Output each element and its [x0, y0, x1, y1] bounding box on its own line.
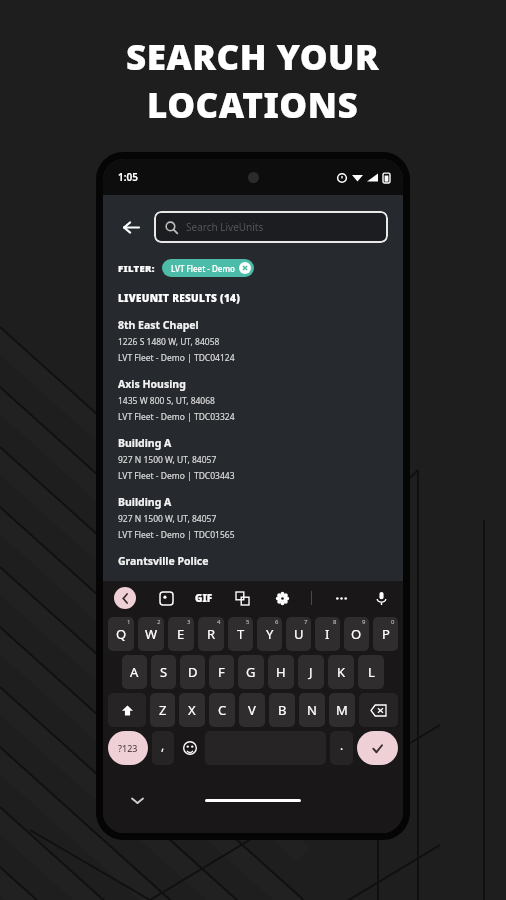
- staticText: Building A: [118, 495, 172, 509]
- staticText: G: [246, 663, 256, 681]
- button[interactable]: K: [328, 655, 354, 689]
- button[interactable]: G: [238, 655, 264, 689]
- staticText: T: [237, 625, 245, 643]
- staticText: S: [160, 663, 168, 681]
- staticText: F: [218, 663, 225, 681]
- staticText: L: [368, 663, 375, 681]
- staticText: 927 N 1500 W, UT, 84057: [118, 454, 217, 466]
- button[interactable]: H: [268, 655, 294, 689]
- button[interactable]: Emoji: [178, 731, 201, 765]
- button[interactable]: Z: [150, 693, 175, 727]
- button[interactable]: N: [299, 693, 325, 727]
- staticText: M: [336, 701, 348, 719]
- staticText: 927 N 1500 W, UT, 84057: [118, 513, 217, 525]
- button[interactable]: Axis Housing: [118, 377, 388, 423]
- staticText: 2: [157, 618, 161, 626]
- button[interactable]: V: [239, 693, 265, 727]
- staticText: 8th East Chapel: [118, 318, 199, 332]
- staticText: Search LiveUnits: [186, 220, 264, 234]
- staticText: U: [294, 625, 304, 643]
- button[interactable]: I: [315, 617, 340, 651]
- staticText: Y: [266, 625, 274, 643]
- staticText: .: [340, 737, 344, 753]
- staticText: R: [207, 625, 216, 643]
- button[interactable]: Enter: [357, 731, 398, 765]
- staticText: 6: [275, 618, 279, 626]
- button[interactable]: L: [358, 655, 384, 689]
- staticText: 7: [304, 618, 308, 626]
- button[interactable]: M: [329, 693, 355, 727]
- staticText: LVT Fleet - Demo: [171, 263, 235, 274]
- staticText: LVT Fleet - Demo | TDC04124: [118, 352, 235, 364]
- button[interactable]: U: [286, 617, 311, 651]
- button[interactable]: More options: [330, 587, 352, 609]
- staticText: Grantsville Police: [118, 554, 209, 568]
- button[interactable]: Building A: [118, 495, 388, 541]
- staticText: J: [309, 663, 313, 681]
- staticText: B: [278, 701, 287, 719]
- button[interactable]: A: [122, 655, 147, 689]
- button[interactable]: Stickers: [155, 587, 177, 609]
- button[interactable]: Search LiveUnits: [154, 211, 388, 243]
- staticText: X: [188, 701, 196, 719]
- staticText: LVT Fleet - Demo | TDC03324: [118, 411, 235, 423]
- button[interactable]: ?123: [108, 731, 148, 765]
- staticText: Building A: [118, 436, 172, 450]
- staticText: 9: [362, 618, 366, 626]
- staticText: 1: [127, 618, 131, 626]
- button[interactable]: Back: [113, 210, 147, 244]
- staticText: Z: [159, 701, 167, 719]
- button[interactable]: O: [344, 617, 369, 651]
- button[interactable]: Period: [330, 731, 353, 765]
- button[interactable]: LVT Fleet - Demo: [162, 259, 254, 277]
- button[interactable]: R: [198, 617, 224, 651]
- staticText: K: [337, 663, 346, 681]
- staticText: 5: [246, 618, 250, 626]
- staticText: W: [145, 625, 158, 643]
- button[interactable]: Hide keyboard: [127, 790, 147, 810]
- staticText: LOCATIONS: [147, 81, 359, 129]
- staticText: Q: [116, 625, 127, 643]
- button[interactable]: Settings: [271, 587, 293, 609]
- button[interactable]: GIF: [195, 591, 213, 605]
- staticText: 8: [333, 618, 337, 626]
- staticText: LIVEUNIT RESULTS (14): [118, 291, 241, 305]
- staticText: Axis Housing: [118, 377, 186, 391]
- button[interactable]: Q: [108, 617, 134, 651]
- staticText: 1226 S 1480 W, UT, 84058: [118, 336, 220, 348]
- button[interactable]: Shift: [108, 693, 146, 727]
- button[interactable]: S: [151, 655, 176, 689]
- button[interactable]: C: [209, 693, 235, 727]
- button[interactable]: Translate: [231, 587, 253, 609]
- button[interactable]: B: [269, 693, 295, 727]
- staticText: 1435 W 800 S, UT, 84068: [118, 395, 215, 407]
- button[interactable]: E: [168, 617, 194, 651]
- staticText: D: [188, 663, 198, 681]
- button[interactable]: 8th East Chapel: [118, 318, 388, 364]
- staticText: SEARCH YOUR: [126, 33, 380, 81]
- button[interactable]: F: [209, 655, 234, 689]
- staticText: LVT Fleet - Demo | TDC01565: [118, 529, 235, 541]
- staticText: ?123: [118, 742, 138, 754]
- staticText: O: [351, 625, 362, 643]
- button[interactable]: W: [138, 617, 164, 651]
- button[interactable]: Building A: [118, 436, 388, 482]
- button[interactable]: X: [179, 693, 205, 727]
- button[interactable]: Backspace: [359, 693, 398, 727]
- button[interactable]: Grantsville Police: [118, 554, 388, 568]
- button[interactable]: Expand toolbar: [114, 587, 136, 609]
- button[interactable]: T: [228, 617, 253, 651]
- button[interactable]: P: [373, 617, 398, 651]
- staticText: 4: [217, 618, 221, 626]
- button[interactable]: D: [180, 655, 205, 689]
- button[interactable]: Y: [257, 617, 282, 651]
- staticText: V: [248, 701, 256, 719]
- staticText: LVT Fleet - Demo | TDC03443: [118, 470, 235, 482]
- staticText: H: [276, 663, 286, 681]
- button[interactable]: Voice input: [370, 587, 392, 609]
- staticText: ,: [161, 737, 165, 753]
- button[interactable]: Comma: [152, 731, 174, 765]
- staticText: N: [307, 701, 317, 719]
- button[interactable]: J: [298, 655, 324, 689]
